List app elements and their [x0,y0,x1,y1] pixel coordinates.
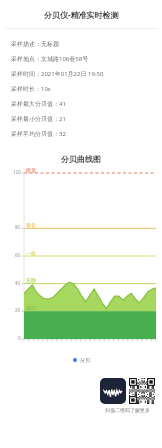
staticText: 极静 [26,305,36,311]
staticText: 60 [15,252,21,258]
button[interactable]: 分贝仪 app icon [100,378,126,404]
staticText: 扫描二维码了解更多 [105,407,150,413]
staticText: 40 [15,280,21,286]
staticText: 分贝 [80,357,90,363]
staticText: 采样时长：10s [11,85,51,93]
staticText: 采样描述：无标题 [11,40,59,48]
staticText: 采样最小分贝值：21 [11,115,66,123]
button[interactable]: QR code, scan to learn more [129,378,155,404]
staticText: 120 [13,169,21,175]
staticText: 痛觉 [26,167,36,173]
staticText: 采样平均分贝值：32 [11,130,66,138]
staticText: 分贝曲线图 [61,154,101,164]
staticText: 0 [18,335,21,341]
staticText: 采样时间：2021年01月22日 19:50 [11,70,104,78]
staticText: 采样地点：文城路106巷58号 [11,55,89,63]
staticText: 分贝仪-精准实时检测 [44,9,119,20]
staticText: 噪音 [26,222,36,228]
staticText: 20 [15,307,21,313]
staticText: 采样最大分贝值：41 [11,100,66,108]
staticText: 一般 [26,250,36,256]
staticText: 安静 [26,277,36,283]
staticText: 80 [15,224,21,230]
